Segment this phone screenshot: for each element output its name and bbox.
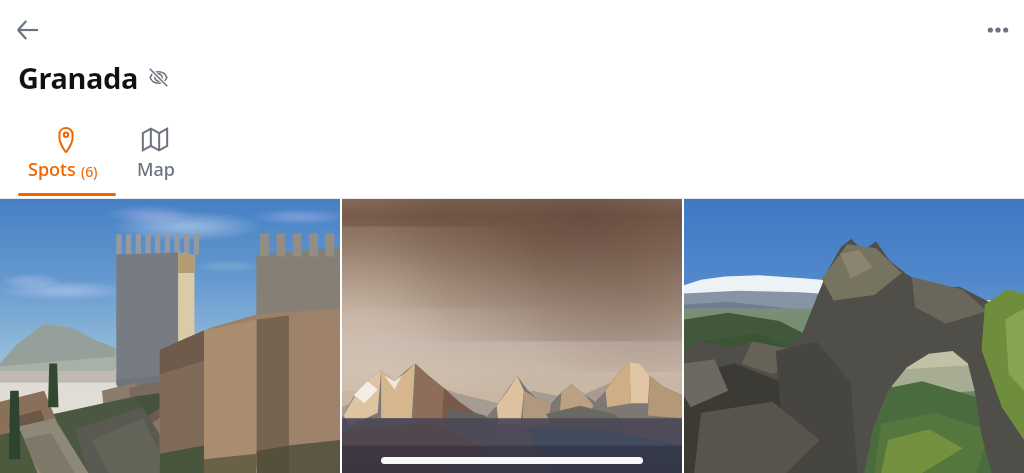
button[interactable]	[342, 199, 682, 473]
button[interactable]: Hidden	[146, 65, 170, 89]
staticText: (6)	[81, 162, 98, 181]
button[interactable]	[0, 199, 340, 473]
button[interactable]: Back	[10, 12, 46, 48]
button[interactable]: More options	[980, 12, 1016, 48]
button[interactable]	[684, 199, 1024, 473]
button[interactable]: Map	[114, 98, 210, 199]
staticText: Granada	[18, 58, 138, 97]
button[interactable]: Spots	[0, 98, 134, 199]
staticText: Spots	[28, 157, 76, 182]
staticText: Map	[137, 157, 175, 182]
